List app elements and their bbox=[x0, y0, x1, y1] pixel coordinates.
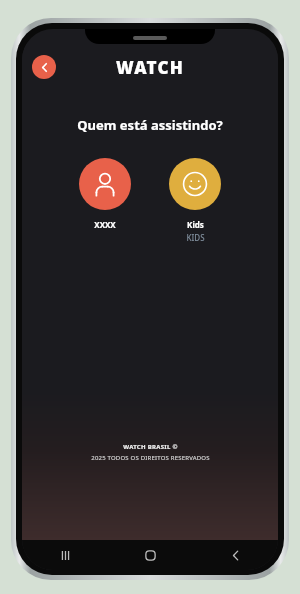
staticText: 2025 TODOS OS DIREITOS RESERVADOS bbox=[91, 454, 210, 462]
button[interactable]: Início bbox=[108, 540, 193, 570]
button[interactable]: Voltar bbox=[32, 55, 56, 79]
button[interactable]: Recentes bbox=[22, 540, 108, 570]
staticText: WATCH BRASIL © bbox=[123, 443, 178, 451]
staticText: WATCH bbox=[116, 56, 184, 79]
staticText: XXXX bbox=[94, 219, 116, 230]
staticText: Kids bbox=[187, 219, 204, 230]
button[interactable]: XXXX bbox=[67, 156, 143, 232]
button[interactable]: Kids bbox=[157, 156, 233, 245]
button[interactable]: Voltar bbox=[193, 540, 278, 570]
staticText: Quem está assistindo? bbox=[22, 116, 278, 134]
staticText: KIDS bbox=[186, 232, 205, 243]
